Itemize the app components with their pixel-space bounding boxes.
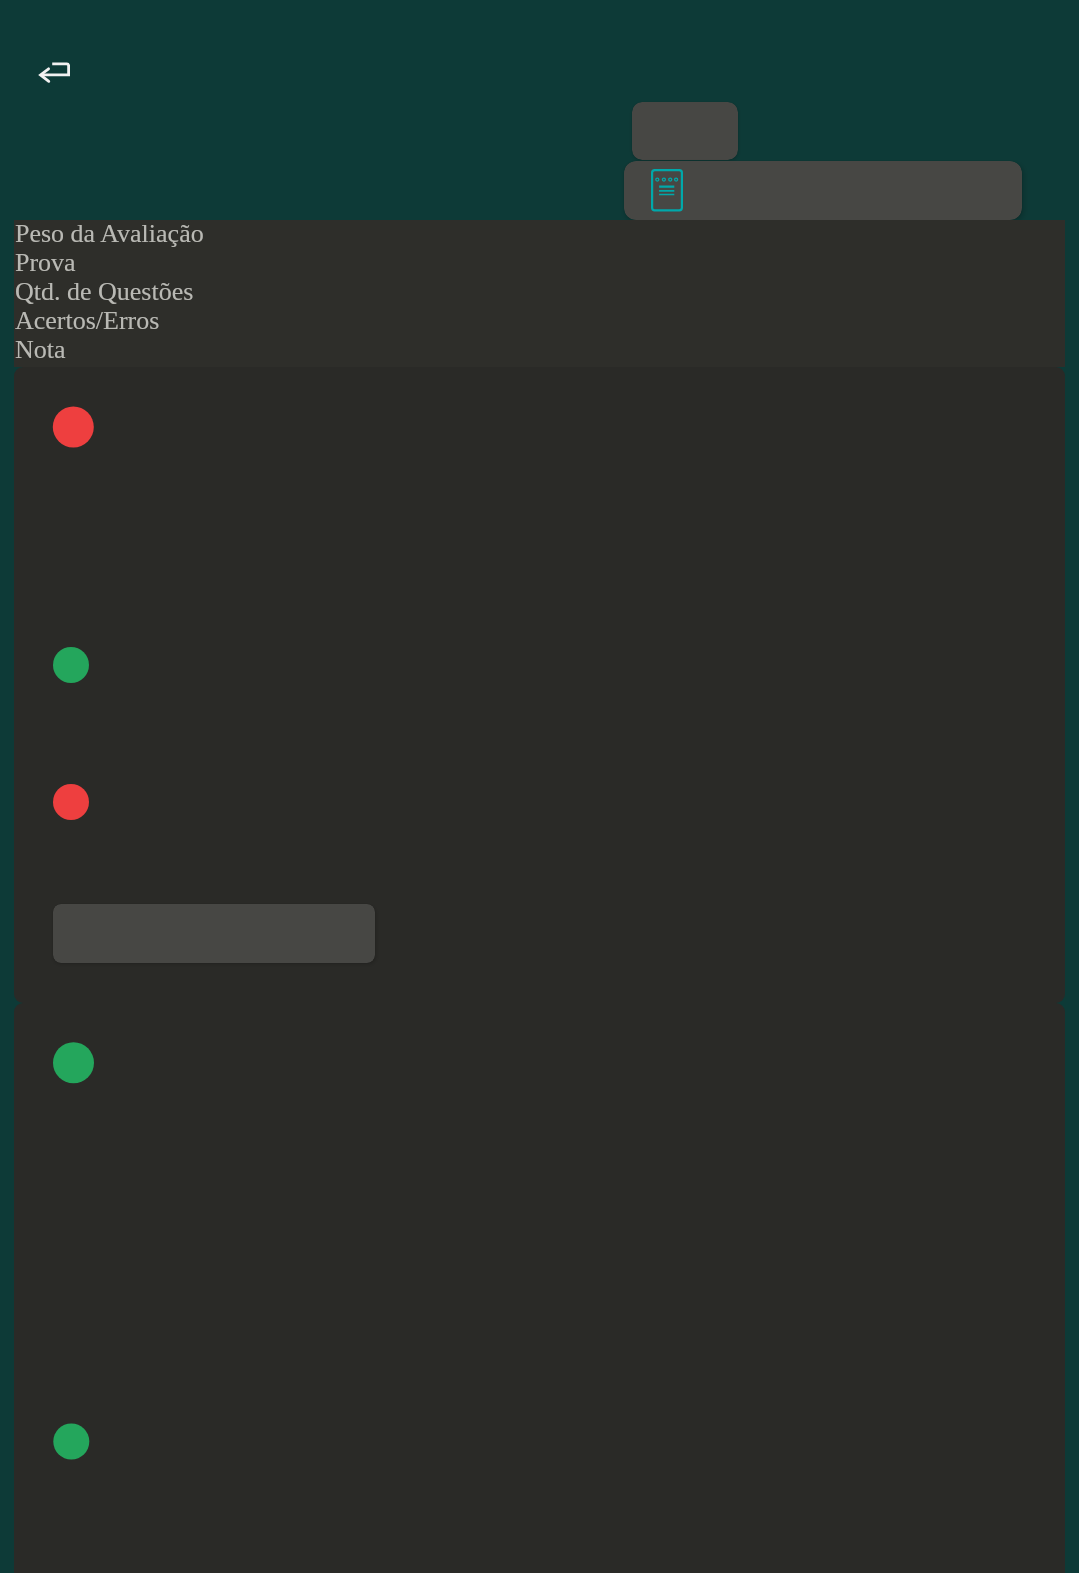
- staticText: Peso da Avaliação: [15, 219, 204, 248]
- staticText: Qtd. de Questões: [15, 277, 194, 306]
- button[interactable]: Voltar: [26, 48, 82, 88]
- staticText: Nota: [15, 335, 66, 364]
- button[interactable]: Abrir prova: [624, 161, 1022, 220]
- button[interactable]: Avaliacao 2: [14, 1003, 1065, 1573]
- button[interactable]: Resumo da avaliacao: [632, 102, 738, 160]
- staticText: Acertos/Erros: [15, 306, 160, 335]
- button[interactable]: Avaliacao 1: [14, 367, 1065, 1003]
- staticText: Prova: [15, 248, 76, 277]
